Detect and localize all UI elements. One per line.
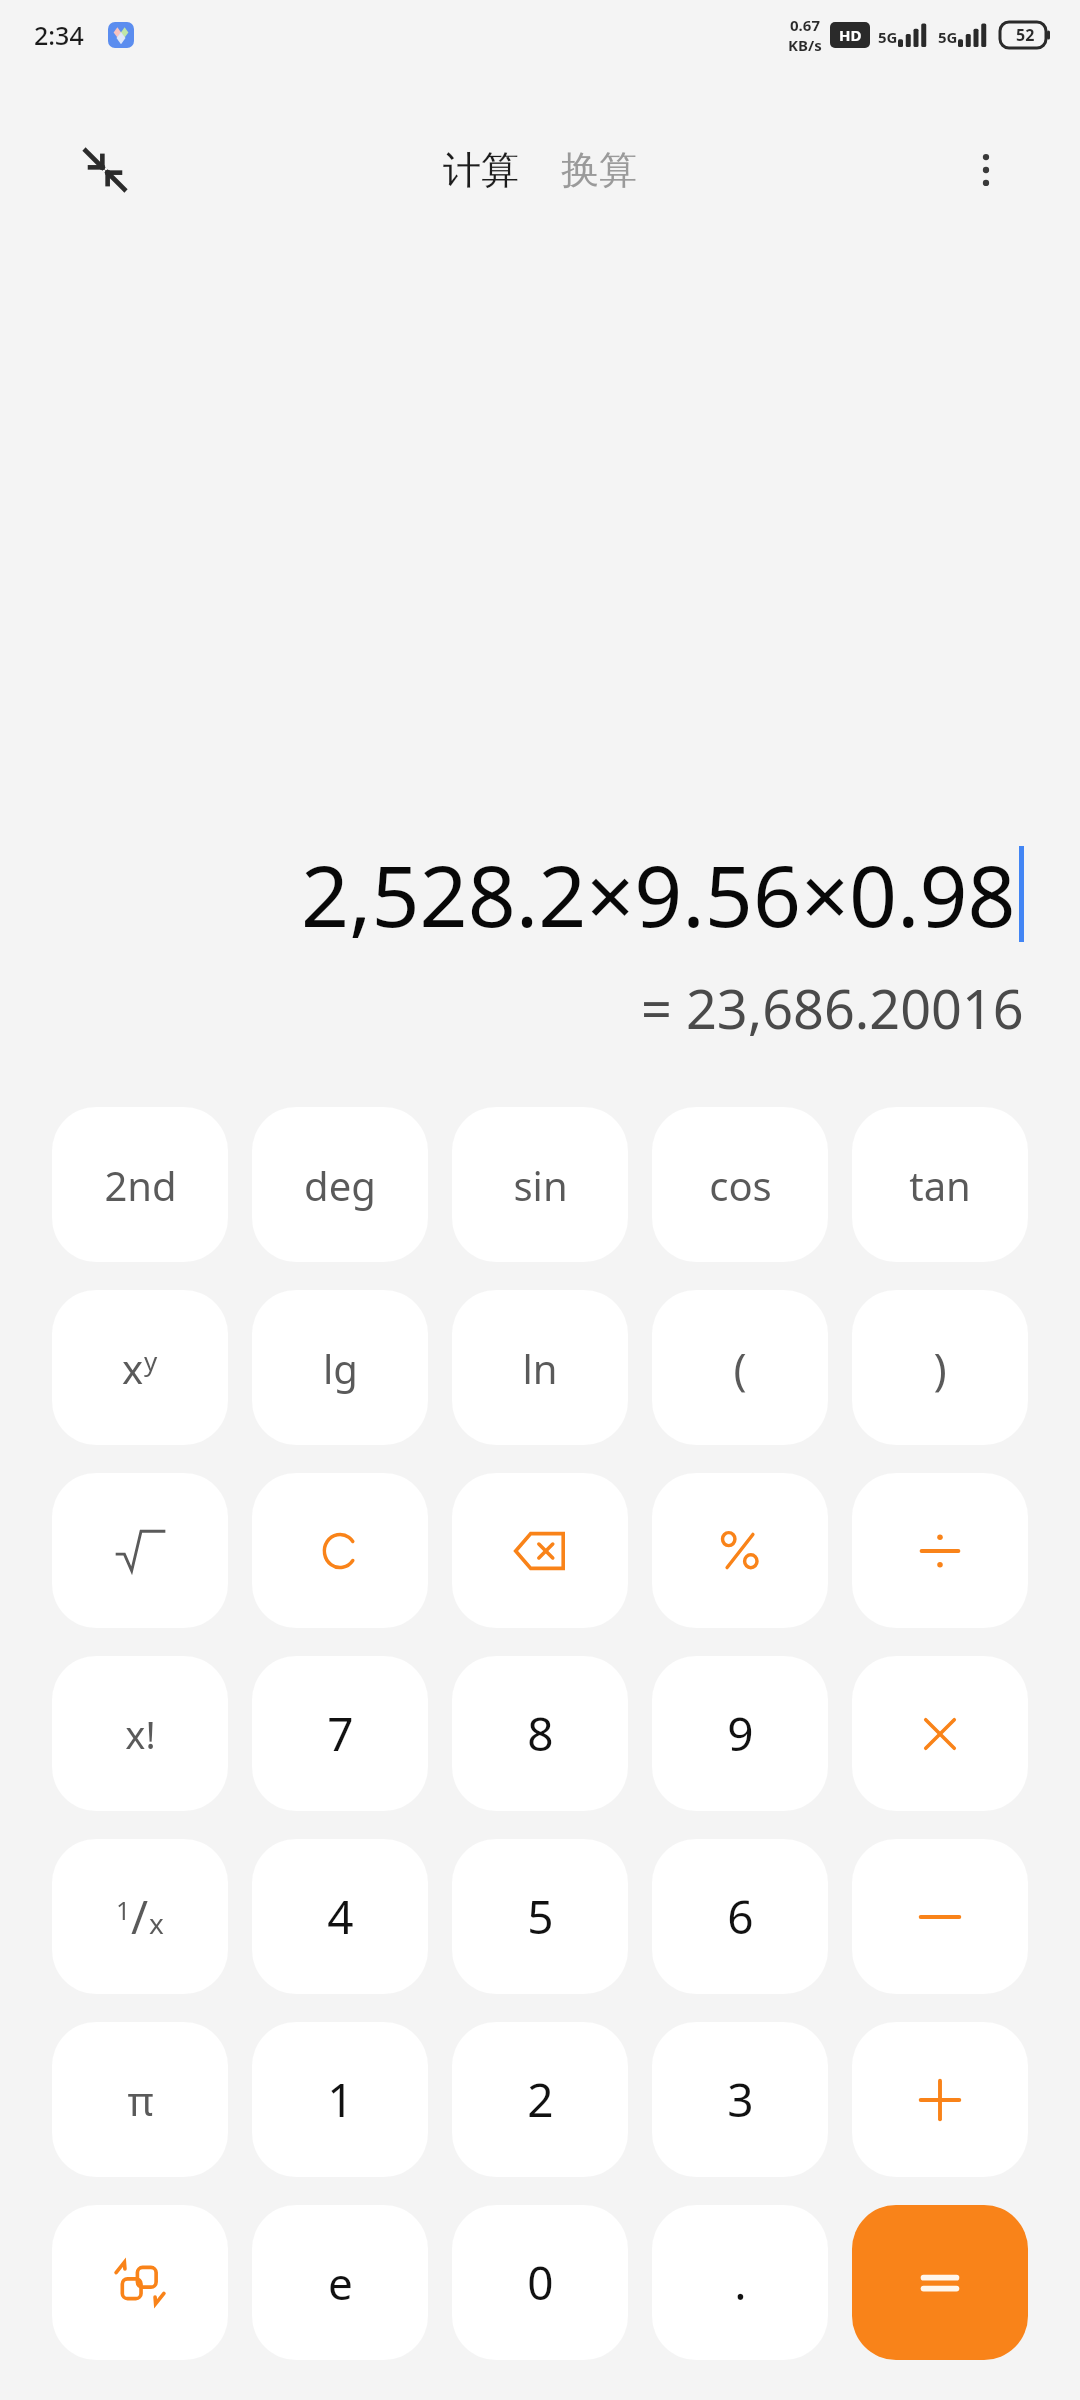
staticText: ln <box>522 1341 558 1395</box>
button[interactable]: Minus <box>852 1839 1028 1994</box>
staticText: 52 <box>1016 24 1035 46</box>
staticText: 6 <box>727 1885 754 1948</box>
staticText: 2:34 <box>34 18 84 52</box>
staticText: x <box>149 1904 164 1942</box>
button[interactable]: Equals <box>852 2205 1028 2360</box>
button[interactable]: 7 <box>252 1656 428 1811</box>
button[interactable]: Plus <box>852 2022 1028 2177</box>
button[interactable]: sin <box>452 1107 628 1262</box>
staticText: 2,528.2×9.56×0.98 <box>301 837 1016 951</box>
button[interactable]: 1 <box>252 2022 428 2177</box>
button[interactable]: 0 <box>452 2205 628 2360</box>
button[interactable]: x <box>52 1290 228 1445</box>
staticText: e <box>328 2253 353 2313</box>
button[interactable]: tan <box>852 1107 1028 1262</box>
staticText: = 23,686.20016 <box>641 971 1024 1045</box>
staticText: deg <box>304 1158 376 1212</box>
button[interactable]: ( <box>652 1290 828 1445</box>
button[interactable]: lg <box>252 1290 428 1445</box>
button[interactable]: 8 <box>452 1656 628 1811</box>
button[interactable]: Clear <box>252 1473 428 1628</box>
staticText: x <box>122 1341 144 1395</box>
button[interactable]: cos <box>652 1107 828 1262</box>
button[interactable]: 计算 <box>433 138 529 202</box>
staticText: lg <box>323 1341 358 1395</box>
button[interactable]: x! <box>52 1656 228 1811</box>
staticText: 5G <box>938 27 958 47</box>
staticText: HD <box>839 25 862 45</box>
button[interactable]: . <box>652 2205 828 2360</box>
staticText: 5G <box>878 27 898 47</box>
staticText: 2 <box>527 2068 554 2131</box>
button[interactable]: 1 <box>52 1839 228 1994</box>
button[interactable]: 3 <box>652 2022 828 2177</box>
button[interactable]: e <box>252 2205 428 2360</box>
staticText: tan <box>909 1158 971 1212</box>
staticText: 3 <box>727 2068 754 2131</box>
staticText: KB/s <box>788 35 822 55</box>
button[interactable]: ln <box>452 1290 628 1445</box>
button[interactable]: Collapse <box>62 127 148 213</box>
button[interactable]: 9 <box>652 1656 828 1811</box>
staticText: 换算 <box>561 146 637 194</box>
button[interactable]: Multiply <box>852 1656 1028 1811</box>
button[interactable]: More options <box>946 130 1026 210</box>
button[interactable]: Formula <box>52 2205 228 2360</box>
staticText: π <box>127 2073 154 2127</box>
staticText: 9 <box>727 1702 754 1765</box>
button[interactable]: 换算 <box>551 138 647 202</box>
staticText: / <box>131 1885 149 1948</box>
button[interactable]: 2 <box>452 2022 628 2177</box>
staticText: 0 <box>527 2251 554 2314</box>
button[interactable]: π <box>52 2022 228 2177</box>
staticText: sin <box>513 1158 568 1212</box>
staticText: 8 <box>527 1702 554 1765</box>
button[interactable]: Percent <box>652 1473 828 1628</box>
button[interactable]: 6 <box>652 1839 828 1994</box>
staticText: cos <box>709 1158 772 1212</box>
staticText: 5 <box>527 1885 554 1948</box>
staticText: ) <box>933 1338 947 1398</box>
button[interactable]: Divide <box>852 1473 1028 1628</box>
staticText: 0.67 <box>790 15 820 35</box>
staticText: 2nd <box>104 1158 177 1212</box>
staticText: . <box>734 2251 747 2314</box>
staticText: 计算 <box>443 146 519 194</box>
button[interactable]: Backspace <box>452 1473 628 1628</box>
button[interactable]: Square root <box>52 1473 228 1628</box>
staticText: ( <box>733 1338 747 1398</box>
staticText: 4 <box>327 1885 354 1948</box>
button[interactable]: 2nd <box>52 1107 228 1262</box>
staticText: x! <box>125 1708 156 1760</box>
staticText: 1 <box>116 1893 131 1927</box>
button[interactable]: 4 <box>252 1839 428 1994</box>
button[interactable]: ) <box>852 1290 1028 1445</box>
button[interactable]: 5 <box>452 1839 628 1994</box>
staticText: y <box>144 1343 158 1378</box>
button[interactable]: deg <box>252 1107 428 1262</box>
staticText: 1 <box>327 2068 354 2131</box>
staticText: 7 <box>327 1702 354 1765</box>
